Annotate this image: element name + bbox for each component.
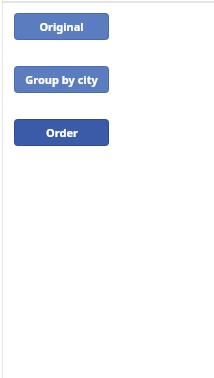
button[interactable]: Group by city (15, 67, 108, 92)
staticText: Order (46, 125, 78, 140)
button[interactable]: Original (15, 14, 108, 39)
staticText: Group by city (25, 72, 98, 87)
staticText: Original (39, 19, 84, 34)
button[interactable]: Order (15, 120, 108, 145)
